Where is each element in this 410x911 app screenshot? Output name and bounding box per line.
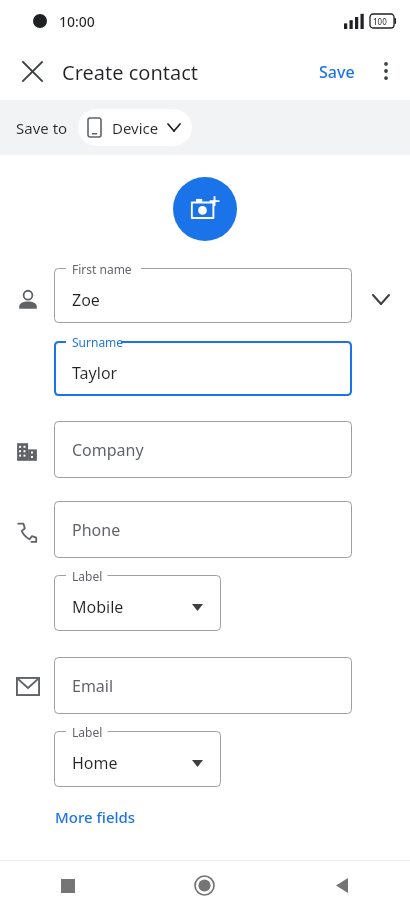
staticText: Label	[72, 568, 103, 584]
staticText: Create contact	[62, 59, 199, 86]
staticText: Save	[319, 61, 355, 83]
button[interactable]: Surname	[54, 341, 352, 396]
staticText: Home	[72, 752, 118, 774]
staticText: Label	[72, 724, 103, 740]
staticText: Phone	[72, 519, 121, 541]
button[interactable]: Expand name fields	[363, 281, 399, 317]
staticText: More fields	[55, 807, 136, 827]
staticText: 10:00	[59, 12, 95, 31]
staticText: Email	[72, 675, 114, 697]
staticText: Mobile	[72, 596, 124, 618]
button[interactable]: Label	[54, 731, 221, 787]
staticText: Save to	[16, 118, 68, 138]
button[interactable]: Device	[78, 109, 192, 146]
button[interactable]: Email	[54, 657, 352, 714]
staticText: Device	[112, 118, 159, 138]
button[interactable]: Recents	[0, 860, 136, 911]
staticText: First name	[72, 261, 132, 277]
button[interactable]: Phone	[54, 501, 352, 558]
staticText: Surname	[72, 334, 124, 350]
button[interactable]: Label	[54, 575, 221, 631]
button[interactable]: Save	[311, 55, 363, 89]
button[interactable]: First name	[54, 268, 352, 323]
button[interactable]: Back	[273, 860, 410, 911]
staticText: Company	[72, 439, 144, 461]
staticText: 100	[373, 16, 387, 27]
button[interactable]: More fields	[47, 801, 144, 833]
button[interactable]: More options	[366, 51, 406, 91]
button[interactable]: Company	[54, 421, 352, 478]
staticText: Taylor	[72, 362, 118, 384]
button[interactable]: Home	[136, 860, 273, 911]
button[interactable]: Add photo	[173, 177, 237, 241]
staticText: Zoe	[72, 289, 100, 311]
button[interactable]: Close	[12, 51, 52, 91]
